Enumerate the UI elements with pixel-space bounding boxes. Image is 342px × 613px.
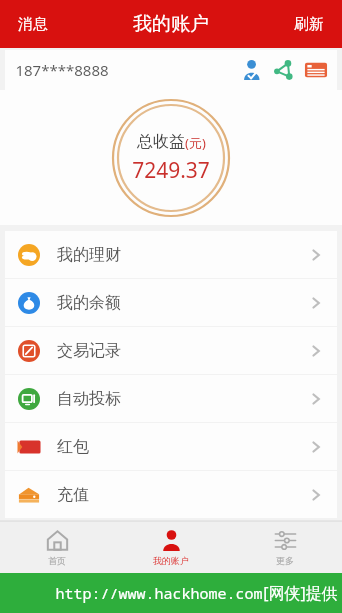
staticText: 充值 [57, 485, 89, 505]
staticText: 我的账户 [153, 555, 189, 566]
staticText: 我的理财 [57, 245, 121, 265]
staticText: 总收益 [137, 132, 185, 152]
staticText: 刷新 [294, 15, 324, 34]
staticText: 消息 [18, 15, 48, 34]
button[interactable]: 我的理财 [5, 231, 337, 278]
staticText: 红包 [57, 437, 89, 457]
staticText: (元) [185, 134, 206, 152]
button[interactable]: 交易记录 [5, 327, 337, 374]
staticText: 自动投标 [57, 389, 121, 409]
button[interactable]: 首页 [0, 521, 114, 573]
button[interactable]: 刷新 [276, 0, 342, 48]
staticText: 7249.37 [132, 156, 210, 185]
button[interactable]: 红包 [5, 423, 337, 470]
button[interactable]: 我的账户 [114, 521, 228, 573]
staticText: [网侠]提供 [263, 582, 338, 604]
button[interactable]: Share [271, 57, 297, 83]
staticText: 更多 [276, 555, 294, 566]
button[interactable]: 更多 [228, 521, 342, 573]
button[interactable]: 消息 [0, 0, 66, 48]
button[interactable]: 自动投标 [5, 375, 337, 422]
button[interactable]: Bank card [303, 57, 329, 83]
staticText: 187****8888 [15, 60, 109, 80]
button[interactable]: 我的余额 [5, 279, 337, 326]
button[interactable]: Verified user [239, 57, 265, 83]
staticText: 我的余额 [57, 293, 121, 313]
staticText: 交易记录 [57, 341, 121, 361]
staticText: 首页 [48, 555, 66, 566]
staticText: 我的账户 [133, 12, 209, 36]
button[interactable]: 充值 [5, 471, 337, 518]
staticText: http://www.hackhome.com [55, 583, 263, 603]
